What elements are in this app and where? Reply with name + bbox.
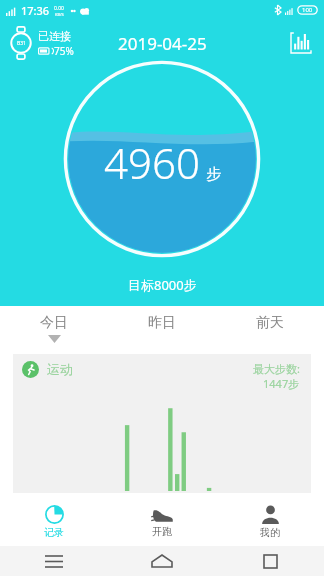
staticText: 开跑 (152, 525, 172, 538)
staticText: 昨日 (148, 314, 176, 332)
button[interactable]: 我的 (216, 498, 324, 546)
staticText: 0.00 (54, 5, 64, 12)
button[interactable]: 记录 (0, 498, 108, 546)
staticText: 已连接 (38, 29, 71, 43)
button[interactable]: B31 (6, 28, 74, 58)
button[interactable]: Menu (0, 546, 108, 576)
button[interactable]: 统计图表 (285, 27, 317, 59)
button[interactable]: 运动 (13, 354, 311, 493)
staticText: 今日 (40, 314, 68, 332)
button[interactable]: Home (108, 546, 216, 576)
staticText: 最大步数: (253, 361, 300, 376)
staticText: 记录 (44, 526, 64, 539)
staticText: 100 (302, 6, 313, 14)
staticText: KB/S (55, 12, 64, 17)
staticText: 1447步 (263, 376, 300, 391)
button[interactable]: 今日 (0, 306, 108, 354)
staticText: 目标8000步 (128, 276, 197, 294)
staticText: 75% (54, 44, 74, 58)
button[interactable]: Recents (216, 546, 324, 576)
staticText: 前天 (256, 314, 284, 332)
staticText: 17:36 (21, 3, 50, 18)
staticText: 运动 (47, 361, 73, 377)
staticText: 4960 (104, 134, 200, 191)
staticText: 我的 (260, 526, 280, 539)
button[interactable]: 昨日 (108, 306, 216, 354)
staticText: 步 (206, 165, 221, 184)
staticText: B31 (17, 40, 26, 47)
button[interactable]: 前天 (216, 306, 324, 354)
staticText: 2019-04-25 (118, 32, 207, 55)
button[interactable]: 开跑 (108, 498, 216, 546)
